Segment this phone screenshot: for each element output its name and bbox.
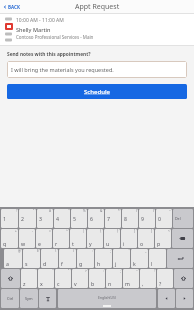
button[interactable]: n: [106, 269, 122, 288]
staticText: ;: [110, 249, 111, 253]
staticText: ]: [151, 229, 153, 233]
button[interactable]: Shift: [1, 269, 20, 288]
button[interactable]: e: [36, 229, 52, 248]
button[interactable]: ,: [140, 269, 156, 288]
button[interactable]: h: [95, 249, 112, 268]
button[interactable]: u: [104, 229, 120, 248]
button[interactable]: ?: [157, 269, 173, 288]
button[interactable]: g: [77, 249, 94, 268]
button[interactable]: BACK: [2, 3, 21, 11]
button[interactable]: Move right: [176, 289, 193, 308]
staticText: `: [128, 249, 129, 253]
button[interactable]: i: [121, 229, 137, 248]
staticText: y: [89, 240, 92, 247]
staticText: n: [108, 280, 112, 287]
staticText: 8: [124, 215, 127, 222]
button[interactable]: d: [41, 249, 58, 268]
button[interactable]: y: [87, 229, 103, 248]
staticText: ?: [159, 280, 162, 287]
button[interactable]: Schedule: [7, 84, 187, 99]
button[interactable]: 0: [156, 209, 172, 228]
button[interactable]: r: [53, 229, 69, 248]
button[interactable]: 8: [122, 209, 138, 228]
button[interactable]: f: [59, 249, 76, 268]
staticText: Ctrl: [7, 296, 14, 301]
staticText: t: [72, 240, 74, 247]
staticText: Send notes with this appointment?: [7, 51, 91, 58]
button[interactable]: o: [138, 229, 154, 248]
button[interactable]: Change keyboard: [39, 289, 56, 308]
button[interactable]: 3: [37, 209, 53, 228]
staticText: Schedule: [84, 88, 110, 96]
button[interactable]: k: [131, 249, 148, 268]
button[interactable]: z: [21, 269, 37, 288]
staticText: ': [52, 269, 53, 273]
staticText: ): [153, 209, 154, 213]
button[interactable]: a: [4, 249, 22, 268]
button[interactable]: Enter: [167, 249, 193, 268]
button[interactable]: c: [55, 269, 71, 288]
staticText: s: [25, 260, 28, 267]
button[interactable]: I will bring the materials you requested…: [7, 61, 187, 78]
staticText: p: [157, 240, 161, 247]
staticText: /: [73, 249, 75, 253]
staticText: (: [136, 209, 137, 213]
button[interactable]: b: [89, 269, 105, 288]
button[interactable]: 6: [88, 209, 104, 228]
staticText: Contoso Professional Services - Main: [16, 34, 94, 40]
button[interactable]: 4: [54, 209, 70, 228]
button[interactable]: Sym: [20, 289, 38, 308]
button[interactable]: x: [38, 269, 54, 288]
staticText: c: [57, 280, 60, 287]
staticText: w: [21, 240, 26, 247]
staticText: ^: [66, 229, 68, 233]
staticText: <: [168, 229, 170, 233]
staticText: %: [83, 209, 86, 213]
staticText: 7: [107, 215, 110, 222]
button[interactable]: Ctrl: [1, 289, 19, 308]
button[interactable]: Move left: [158, 289, 175, 308]
staticText: [: [134, 229, 136, 233]
staticText: !: [154, 269, 155, 273]
button[interactable]: p: [155, 229, 171, 248]
staticText: 9: [141, 215, 144, 222]
staticText: 6: [90, 215, 93, 222]
staticText: ": [68, 269, 70, 273]
staticText: m: [125, 280, 130, 287]
button[interactable]: m: [123, 269, 139, 288]
staticText: d: [43, 260, 47, 267]
button[interactable]: 2: [19, 209, 36, 228]
button[interactable]: w: [19, 229, 35, 248]
button[interactable]: 9: [139, 209, 155, 228]
button[interactable]: s: [23, 249, 40, 268]
button[interactable]: q: [1, 229, 18, 248]
staticText: >: [85, 269, 87, 273]
button[interactable]: Del: [173, 209, 193, 228]
staticText: +: [15, 229, 17, 233]
staticText: f: [61, 260, 63, 267]
button[interactable]: t: [70, 229, 86, 248]
staticText: v: [74, 280, 77, 287]
button[interactable]: Space: [58, 289, 156, 308]
staticText: 0: [158, 215, 161, 222]
button[interactable]: Shift: [174, 269, 193, 288]
staticText: I will bring the materials you requested…: [11, 66, 114, 73]
button[interactable]: Backspace: [172, 229, 193, 248]
staticText: :: [103, 269, 104, 273]
button[interactable]: 5: [71, 209, 87, 228]
staticText: $: [37, 249, 39, 253]
button[interactable]: 7: [105, 209, 121, 228]
button[interactable]: j: [113, 249, 130, 268]
staticText: \: [55, 249, 57, 253]
staticText: |: [83, 229, 85, 233]
staticText: o: [140, 240, 144, 247]
staticText: _: [145, 249, 147, 253]
staticText: Sym: [25, 296, 33, 301]
staticText: ,: [142, 280, 144, 287]
staticText: 3: [39, 215, 42, 222]
button[interactable]: v: [72, 269, 88, 288]
staticText: a: [6, 260, 9, 267]
button[interactable]: 1: [1, 209, 18, 228]
staticText: {: [100, 229, 102, 233]
button[interactable]: l: [149, 249, 166, 268]
